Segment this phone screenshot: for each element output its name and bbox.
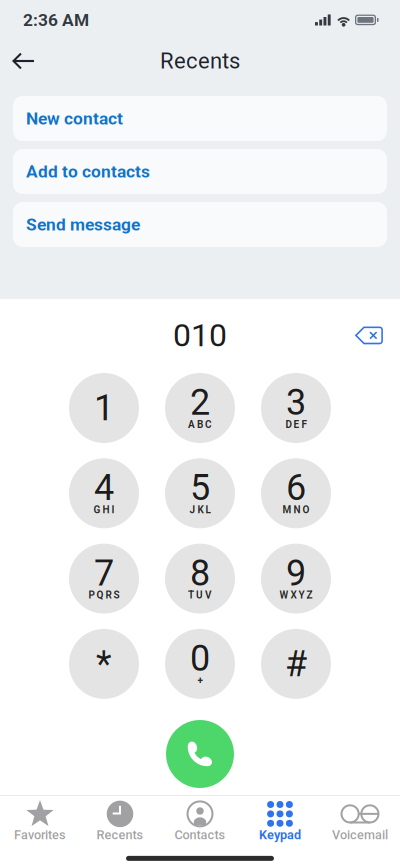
button[interactable]: Send message — [13, 202, 387, 247]
staticText: Contacts — [174, 827, 225, 842]
staticText: 6 — [286, 467, 306, 509]
staticText: M N O — [282, 504, 309, 516]
staticText: + — [197, 674, 202, 686]
staticText: New contact — [26, 108, 123, 129]
staticText: Voicemail — [332, 827, 388, 842]
staticText: G H I — [93, 504, 114, 516]
staticText: Add to contacts — [26, 161, 150, 182]
staticText: * — [96, 643, 112, 685]
staticText: W X Y Z — [279, 589, 312, 601]
staticText: 1 — [94, 387, 114, 429]
button[interactable]: Call — [166, 720, 234, 788]
button[interactable]: # — [261, 629, 331, 699]
button[interactable]: 8 — [165, 544, 235, 614]
button[interactable]: Favorites — [0, 796, 80, 848]
staticText: 010 — [173, 317, 227, 354]
staticText: 3 — [286, 381, 306, 424]
staticText: 8 — [190, 552, 210, 594]
staticText: 0 — [190, 637, 210, 679]
button[interactable]: Voicemail — [320, 796, 400, 848]
staticText: # — [285, 643, 307, 685]
button[interactable]: 2 — [165, 373, 235, 443]
staticText: Recents — [160, 48, 240, 74]
button[interactable]: 7 — [69, 544, 139, 614]
button[interactable]: 0 — [165, 629, 235, 699]
button[interactable]: Contacts — [160, 796, 240, 848]
staticText: 5 — [190, 467, 210, 509]
button[interactable]: 4 — [69, 458, 139, 528]
staticText: A B C — [188, 419, 212, 430]
staticText: Favorites — [14, 827, 66, 842]
button[interactable]: * — [69, 629, 139, 699]
staticText: 4 — [94, 467, 114, 509]
staticText: 2 — [190, 381, 210, 424]
button[interactable]: 3 — [261, 373, 331, 443]
button[interactable]: New contact — [13, 96, 387, 141]
button[interactable]: Back — [0, 43, 46, 79]
button[interactable]: 6 — [261, 458, 331, 528]
staticText: 2:36 AM — [23, 10, 89, 30]
staticText: J K L — [189, 504, 210, 516]
staticText: P Q R S — [88, 589, 119, 601]
button[interactable]: Add to contacts — [13, 149, 387, 194]
staticText: 9 — [286, 552, 306, 594]
staticText: Recents — [96, 827, 143, 842]
button[interactable]: 9 — [261, 544, 331, 614]
button[interactable]: Delete — [346, 321, 392, 349]
button[interactable]: Keypad — [240, 796, 320, 848]
button[interactable]: 5 — [165, 458, 235, 528]
staticText: D E F — [285, 419, 306, 430]
staticText: Keypad — [259, 827, 301, 842]
staticText: 7 — [94, 552, 114, 594]
button[interactable]: Recents — [80, 796, 160, 848]
staticText: Send message — [26, 214, 140, 235]
staticText: T U V — [188, 589, 212, 601]
button[interactable]: 1 — [69, 373, 139, 443]
